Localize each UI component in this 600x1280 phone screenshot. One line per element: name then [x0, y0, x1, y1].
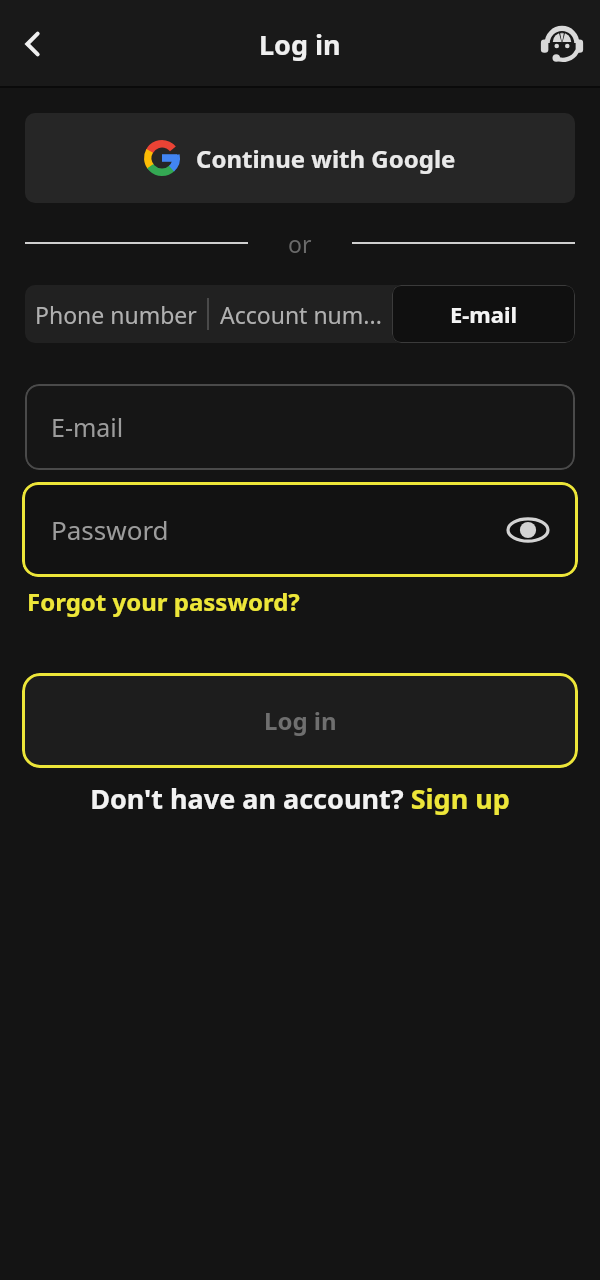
staticText: Don't have an account? Sign up [90, 780, 510, 817]
staticText: Log in [264, 704, 337, 737]
button[interactable]: E-mail [25, 384, 575, 470]
button[interactable] [20, 31, 46, 57]
button[interactable]: Account num... [209, 285, 392, 343]
button[interactable]: E-mail [392, 285, 575, 343]
staticText: E-mail [51, 410, 124, 444]
staticText: Phone number [35, 299, 197, 330]
button[interactable]: Log in [22, 673, 578, 768]
staticText: Password [51, 512, 169, 547]
staticText: E-mail [450, 299, 518, 329]
staticText: or [288, 228, 312, 258]
staticText: Continue with Google [196, 142, 456, 175]
staticText: Log in [259, 26, 341, 63]
staticText: Account num... [220, 299, 382, 330]
button[interactable]: Don't have an account? Sign up [0, 780, 600, 817]
button[interactable]: Phone number [25, 285, 207, 343]
button[interactable]: Forgot your password? [27, 585, 300, 618]
button[interactable]: Continue with Google [25, 113, 575, 203]
button[interactable] [540, 22, 584, 66]
button[interactable]: Password [22, 482, 578, 577]
